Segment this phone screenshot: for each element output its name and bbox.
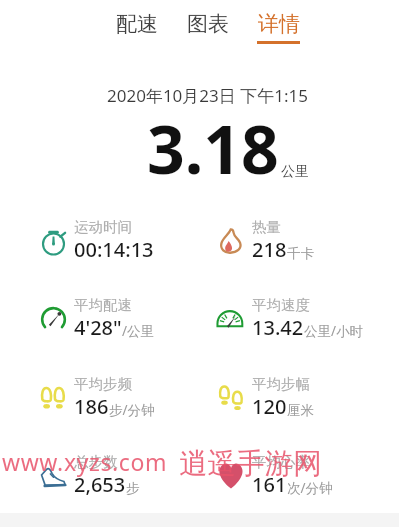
other: Average cadence	[41, 386, 65, 410]
button[interactable]: Average stride	[216, 375, 314, 420]
other: Duration	[41, 229, 66, 254]
staticText: 186	[74, 393, 109, 420]
staticText: 平均步幅	[252, 375, 310, 393]
other: Calories	[219, 229, 243, 253]
staticText: 218	[252, 236, 287, 263]
button[interactable]: Average speed	[216, 296, 364, 341]
other: Average speed	[218, 306, 245, 333]
staticText: 厘米	[287, 402, 314, 419]
button[interactable]: Total steps	[38, 453, 140, 498]
staticText: 161	[252, 471, 287, 498]
staticText: 13.42	[252, 314, 304, 341]
button[interactable]: Average cadence	[38, 375, 155, 420]
staticText: 配速	[116, 11, 158, 37]
staticText: 热量	[252, 218, 281, 236]
staticText: 总步数	[74, 453, 118, 471]
staticText: 公里	[281, 163, 309, 181]
staticText: 平均步频	[74, 375, 132, 393]
other: Total steps	[40, 463, 66, 489]
staticText: 图表	[187, 11, 229, 37]
staticText: 公里/小时	[304, 322, 364, 340]
staticText: 步/分钟	[109, 401, 155, 419]
staticText: 次/分钟	[287, 479, 333, 497]
staticText: 详情	[258, 11, 300, 37]
staticText: 步	[126, 480, 140, 497]
button[interactable]: Average heart rate	[216, 453, 333, 498]
staticText: 平均速度	[252, 296, 310, 314]
staticText: 120	[252, 393, 287, 420]
other: Average pace	[40, 306, 67, 333]
staticText: 2020年10月23日 下午1:15	[107, 84, 308, 107]
button[interactable]: Average pace	[38, 296, 155, 341]
staticText: 平均心率	[252, 453, 310, 471]
staticText: 3.18	[147, 103, 279, 193]
other: Average stride	[219, 386, 243, 410]
staticText: 00:14:13	[74, 236, 154, 263]
other: Average heart rate	[216, 461, 246, 491]
staticText: 平均配速	[74, 296, 132, 314]
staticText: 2,653	[74, 471, 126, 498]
staticText: www.xyzs.com	[2, 446, 168, 477]
button[interactable]: 配速	[113, 0, 160, 44]
button[interactable]: Duration	[38, 218, 154, 263]
staticText: 4'28"	[74, 314, 122, 341]
button[interactable]: 图表	[184, 0, 231, 44]
button[interactable]: 详情	[255, 0, 302, 44]
button[interactable]: Calories	[216, 218, 314, 263]
staticText: /公里	[122, 322, 155, 340]
staticText: 逍遥手游网	[179, 446, 322, 482]
staticText: 千卡	[287, 245, 314, 262]
staticText: 运动时间	[74, 218, 132, 236]
